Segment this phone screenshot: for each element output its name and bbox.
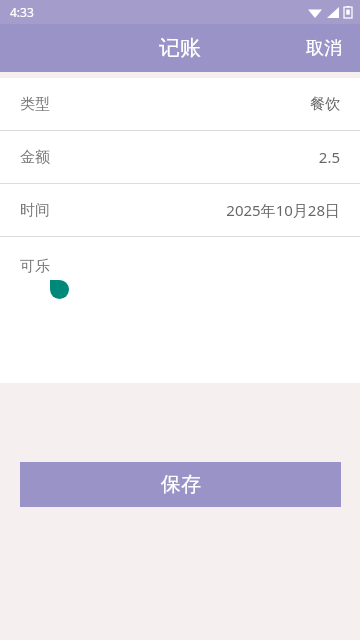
button[interactable]: 时间 <box>0 184 360 236</box>
staticText: 取消 <box>306 37 342 60</box>
staticText: 金额 <box>20 148 50 167</box>
staticText: 保存 <box>161 472 201 497</box>
button[interactable]: 保存 <box>20 462 341 507</box>
staticText: 2025年10月28日 <box>226 200 340 220</box>
button[interactable]: 金额 <box>0 131 360 183</box>
staticText: 记账 <box>159 35 201 61</box>
button[interactable]: 取消 <box>288 24 360 72</box>
button[interactable]: 可乐 <box>0 237 360 323</box>
button[interactable]: 类型 <box>0 78 360 130</box>
staticText: 餐饮 <box>310 95 340 114</box>
staticText: 可乐 <box>20 257 50 276</box>
staticText: 类型 <box>20 95 50 114</box>
other: Text selection handle <box>50 280 69 299</box>
staticText: 2.5 <box>318 147 340 167</box>
staticText: 4:33 <box>10 4 34 20</box>
staticText: 时间 <box>20 201 50 220</box>
